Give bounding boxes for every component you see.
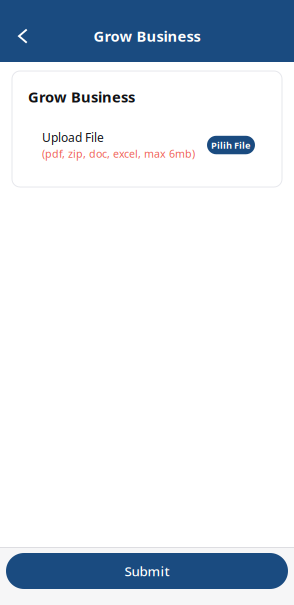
staticText: Submit: [124, 562, 169, 580]
staticText: (pdf, zip, doc, excel, max 6mb): [42, 146, 195, 161]
staticText: Upload File: [42, 129, 104, 145]
button[interactable]: Pilih File: [207, 136, 255, 154]
button[interactable]: Submit: [6, 553, 288, 589]
staticText: Grow Business: [28, 87, 135, 106]
staticText: Pilih File: [211, 139, 251, 151]
staticText: Grow Business: [93, 26, 200, 46]
button[interactable]: Back: [9, 21, 37, 51]
